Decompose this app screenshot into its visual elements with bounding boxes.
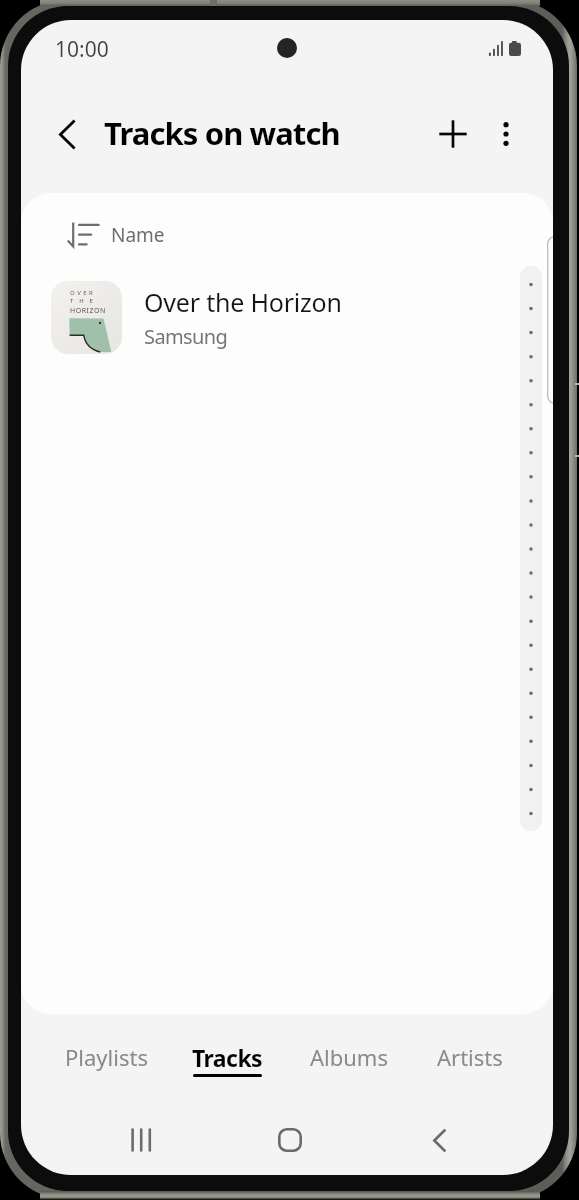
button[interactable]: More options	[482, 110, 530, 158]
button[interactable]: Recent apps	[117, 1116, 165, 1164]
button[interactable]: Back	[415, 1116, 463, 1164]
staticText: Samsung	[144, 323, 228, 350]
staticText: 10:00	[55, 35, 109, 64]
staticText: Tracks on watch	[104, 112, 340, 154]
staticText: Tracks	[192, 1042, 263, 1073]
button[interactable]: Alphabet index	[520, 266, 542, 831]
staticText: Playlists	[65, 1042, 148, 1072]
button[interactable]: O V E R	[21, 272, 553, 362]
button[interactable]: Home	[266, 1116, 314, 1164]
staticText: Artists	[437, 1042, 503, 1072]
button[interactable]: Artists	[409, 1026, 530, 1092]
button[interactable]: Name	[58, 212, 179, 258]
button[interactable]: Edge panel handle	[547, 236, 553, 404]
button[interactable]: Tracks	[167, 1026, 288, 1092]
button[interactable]: Add tracks	[429, 110, 477, 158]
staticText: Over the Horizon	[144, 285, 342, 319]
staticText: Albums	[310, 1042, 388, 1072]
staticText: HORIZON	[70, 306, 106, 316]
staticText: O V E R	[70, 289, 94, 297]
button[interactable]: Playlists	[46, 1026, 167, 1092]
staticText: T H E	[70, 297, 95, 305]
button[interactable]: Albums	[288, 1026, 409, 1092]
button[interactable]: Navigate up	[43, 110, 91, 158]
staticText: Name	[111, 222, 165, 248]
